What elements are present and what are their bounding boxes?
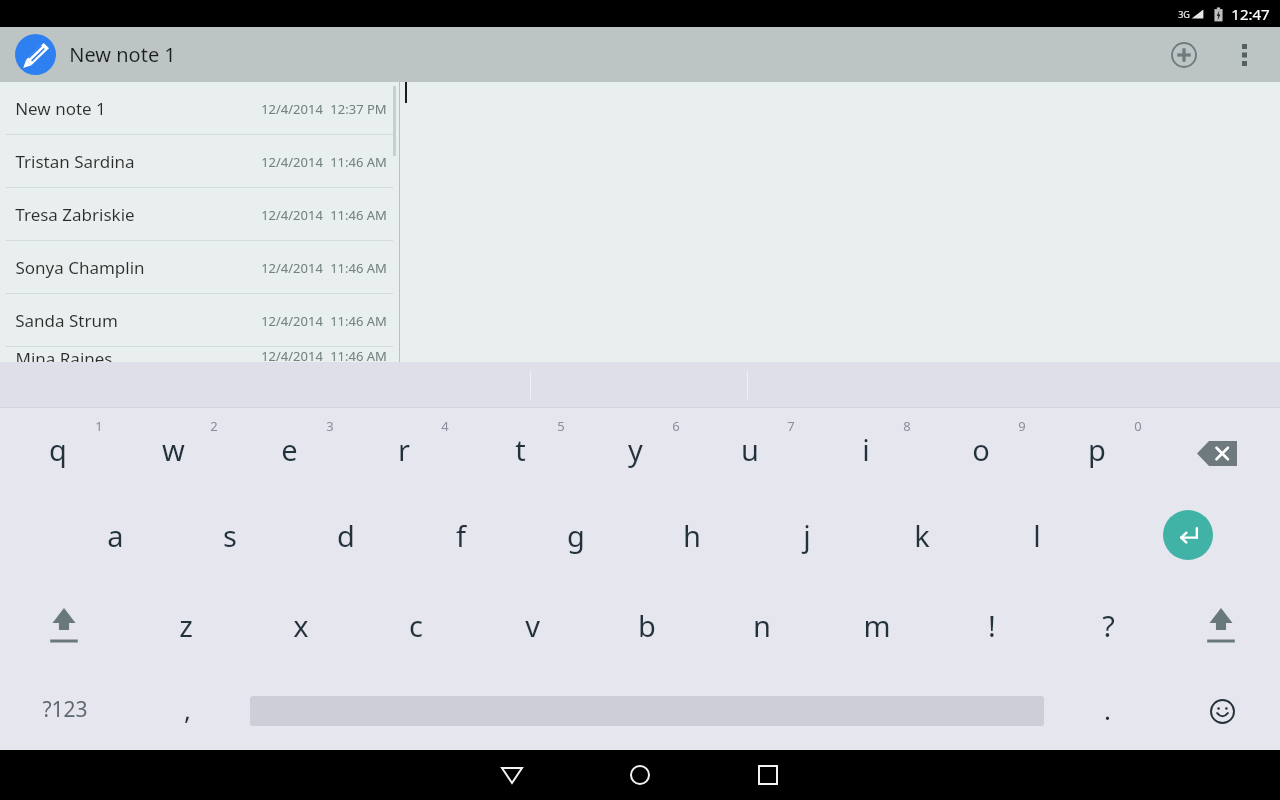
staticText: u [741, 430, 759, 469]
staticText: Tristan Sardina [15, 150, 135, 173]
staticText: ? [1102, 606, 1115, 645]
button[interactable]: b [595, 594, 699, 656]
button[interactable]: Note [15, 34, 56, 75]
button[interactable]: e [237, 418, 341, 480]
button[interactable]: Mina Raines [0, 347, 399, 362]
button[interactable]: Sonya Champlin [0, 241, 399, 293]
button[interactable]: Back [472, 750, 552, 800]
staticText: New note 1 [69, 41, 176, 68]
staticText: e [281, 430, 298, 469]
staticText: 11:46 AM [330, 312, 387, 330]
staticText: 0 [1134, 417, 1142, 435]
staticText: 6 [672, 417, 680, 435]
button[interactable]: v [480, 594, 584, 656]
staticText: 11:46 AM [330, 206, 387, 224]
button[interactable]: f [409, 504, 513, 566]
staticText: a [107, 516, 124, 555]
button[interactable]: Emoji [1189, 686, 1255, 736]
button[interactable]: Recents [728, 750, 808, 800]
button[interactable]: Shift [22, 593, 106, 659]
staticText: h [683, 516, 701, 555]
button[interactable]: , [152, 680, 222, 738]
button[interactable]: New note 1 [0, 82, 399, 134]
button[interactable]: r [352, 418, 456, 480]
staticText: Mina Raines [15, 347, 113, 362]
staticText: Sonya Champlin [15, 256, 145, 279]
staticText: 12/4/2014 [261, 312, 323, 330]
button[interactable]: k [870, 504, 974, 566]
button[interactable]: m [825, 594, 929, 656]
staticText: c [409, 606, 423, 645]
button[interactable]: Home [600, 750, 680, 800]
staticText: 12/4/2014 [261, 347, 323, 362]
staticText: ?123 [42, 695, 88, 724]
staticText: . [1104, 692, 1111, 727]
staticText: f [456, 516, 466, 555]
button[interactable]: t [468, 418, 572, 480]
button[interactable]: Tresa Zabriskie [0, 188, 399, 240]
staticText: v [525, 606, 540, 645]
staticText: 12/4/2014 [261, 206, 323, 224]
staticText: 1 [95, 417, 103, 435]
staticText: 2 [210, 417, 218, 435]
staticText: b [638, 606, 656, 645]
button[interactable]: Enter [1163, 510, 1213, 560]
button[interactable]: ? [1056, 594, 1160, 656]
button[interactable]: d [294, 504, 398, 566]
button[interactable]: . [1072, 680, 1142, 738]
staticText: o [972, 430, 990, 469]
staticText: y [628, 430, 643, 469]
button[interactable]: ?123 [16, 680, 114, 738]
staticText: p [1088, 430, 1106, 469]
staticText: m [863, 606, 891, 645]
staticText: 12/4/2014 [261, 153, 323, 171]
button[interactable]: y [583, 418, 687, 480]
staticText: 7 [787, 417, 795, 435]
staticText: r [398, 430, 410, 469]
staticText: g [567, 516, 585, 555]
button[interactable]: c [364, 594, 468, 656]
staticText: k [914, 516, 930, 555]
staticText: 5 [557, 417, 565, 435]
button[interactable]: ! [940, 594, 1044, 656]
button[interactable]: Add note [1156, 27, 1212, 82]
staticText: 4 [441, 417, 449, 435]
button[interactable]: Tristan Sardina [0, 135, 399, 187]
staticText: 11:46 AM [330, 259, 387, 277]
staticText: 12:37 PM [330, 100, 387, 118]
button[interactable]: More options [1220, 31, 1268, 79]
staticText: New note 1 [15, 97, 106, 120]
button[interactable]: q [6, 418, 110, 480]
staticText: Tresa Zabriskie [15, 203, 135, 226]
staticText: 12/4/2014 [261, 100, 323, 118]
button[interactable]: p [1045, 418, 1149, 480]
staticText: l [1033, 516, 1041, 555]
staticText: i [862, 430, 870, 469]
button[interactable]: n [710, 594, 814, 656]
staticText: 11:46 AM [330, 153, 387, 171]
staticText: 9 [1018, 417, 1026, 435]
button[interactable]: w [121, 418, 225, 480]
button[interactable]: u [698, 418, 802, 480]
button[interactable]: Shift [1179, 593, 1263, 659]
staticText: t [515, 430, 526, 469]
button[interactable]: a [63, 504, 167, 566]
button[interactable]: i [814, 418, 918, 480]
button[interactable]: g [524, 504, 628, 566]
staticText: q [49, 430, 67, 469]
button[interactable]: o [929, 418, 1033, 480]
staticText: s [223, 516, 237, 555]
button[interactable]: Backspace [1178, 430, 1256, 476]
staticText: d [337, 516, 355, 555]
button[interactable]: h [640, 504, 744, 566]
button[interactable]: Sanda Strum [0, 294, 399, 346]
button[interactable]: z [134, 594, 238, 656]
staticText: 8 [903, 417, 911, 435]
button[interactable]: l [985, 504, 1089, 566]
button[interactable]: j [755, 504, 859, 566]
staticText: 3 [326, 417, 334, 435]
button[interactable]: x [249, 594, 353, 656]
staticText: 3G [1178, 8, 1190, 20]
button[interactable]: s [178, 504, 282, 566]
